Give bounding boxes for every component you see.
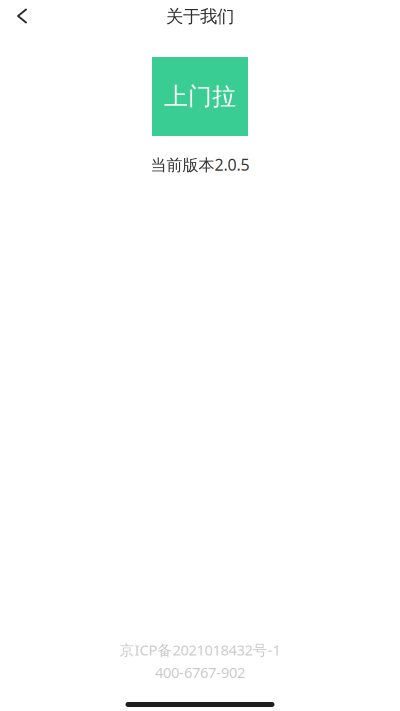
staticText: 400-6767-902 [155, 662, 245, 682]
staticText: 上门拉 [164, 82, 236, 111]
staticText: 京ICP备2021018432号-1 [119, 640, 280, 659]
staticText: 当前版本2.0.5 [150, 154, 249, 175]
staticText: 关于我们 [166, 6, 234, 27]
button[interactable]: Back [0, 0, 44, 32]
